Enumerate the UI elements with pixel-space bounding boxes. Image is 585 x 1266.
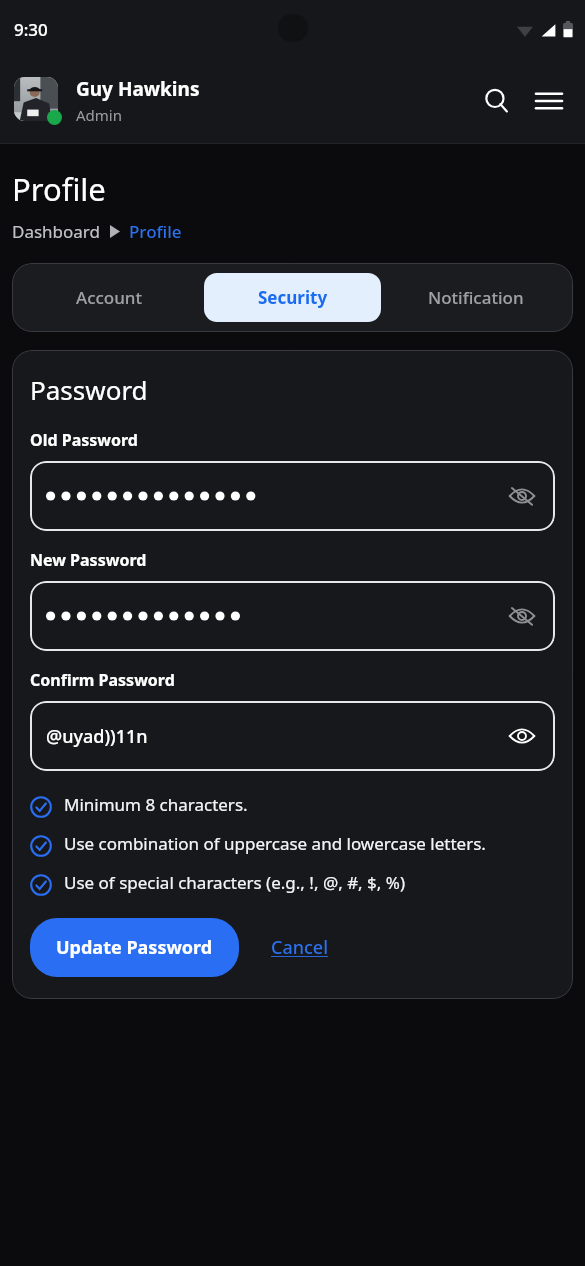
- staticText: Cancel: [271, 935, 329, 960]
- staticText: @uyad))11n: [46, 724, 505, 749]
- staticText: Guy Hawkins: [76, 76, 200, 102]
- button[interactable]: Dashboard: [12, 220, 101, 243]
- button[interactable]: Update Password: [30, 918, 239, 977]
- button[interactable]: Profile: [129, 220, 182, 243]
- staticText: Security: [258, 286, 328, 309]
- button[interactable]: Search: [475, 79, 519, 123]
- button[interactable]: Show password: [46, 461, 539, 531]
- button[interactable]: Account: [21, 273, 198, 322]
- staticText: 9:30: [14, 18, 48, 41]
- staticText: Account: [76, 286, 143, 309]
- button[interactable]: Show password: [505, 599, 539, 633]
- button[interactable]: Hide password: [505, 719, 539, 753]
- staticText: Use combination of uppercase and lowerca…: [64, 832, 486, 855]
- staticText: Minimum 8 characters.: [64, 793, 248, 816]
- button[interactable]: Show password: [46, 581, 539, 651]
- staticText: New Password: [30, 549, 147, 571]
- staticText: Admin: [76, 105, 122, 125]
- button[interactable]: Cancel: [265, 929, 335, 966]
- staticText: Old Password: [30, 429, 138, 451]
- staticText: Update Password: [56, 935, 213, 960]
- button[interactable]: Notification: [387, 273, 564, 322]
- button[interactable]: Security: [204, 273, 381, 322]
- button[interactable]: @uyad))11n: [46, 701, 539, 771]
- button[interactable]: Show password: [505, 479, 539, 513]
- staticText: Notification: [428, 286, 524, 309]
- staticText: Use of special characters (e.g., !, @, #…: [64, 871, 406, 894]
- staticText: Password: [30, 372, 148, 407]
- staticText: Confirm Password: [30, 669, 175, 691]
- staticText: Profile: [12, 168, 106, 210]
- button[interactable]: Menu: [527, 79, 571, 123]
